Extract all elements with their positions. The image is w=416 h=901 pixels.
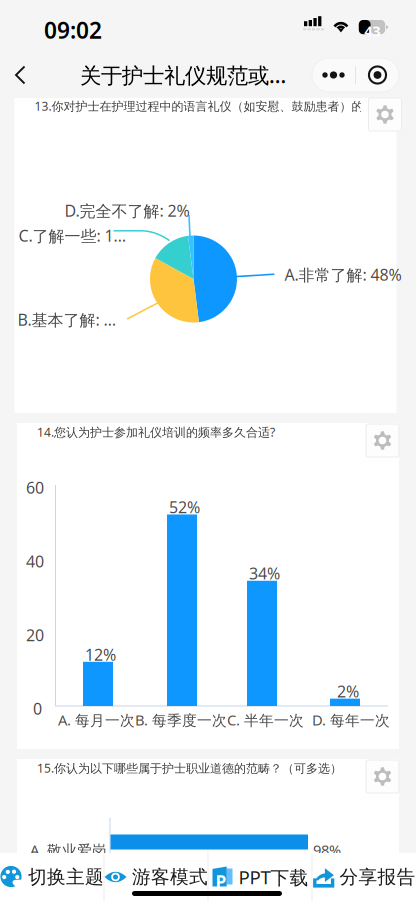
staticText: 12%: [85, 644, 116, 665]
button[interactable]: Chart settings: [368, 98, 401, 131]
staticText: A.非常了解: 48%: [284, 264, 401, 285]
staticText: 60: [26, 477, 44, 498]
button[interactable]: PPT下载: [208, 853, 312, 901]
staticText: 40: [26, 551, 44, 572]
button[interactable]: Close: [356, 58, 399, 92]
staticText: D.完全不了解: 2%: [64, 200, 189, 221]
button[interactable]: More: [312, 58, 355, 92]
staticText: 关于护士礼仪规范或…: [80, 61, 286, 89]
button[interactable]: Chart settings: [366, 760, 399, 793]
staticText: D. 每年一次: [312, 710, 390, 730]
button[interactable]: 分享报告: [312, 853, 416, 901]
staticText: 34%: [249, 563, 280, 584]
button[interactable]: 切换主题: [0, 853, 104, 901]
staticText: 游客模式: [132, 865, 208, 888]
staticText: 15.你认为以下哪些属于护士职业道德的范畴？（可多选）: [37, 760, 342, 776]
staticText: 13.你对护士在护理过程中的语言礼仪（如安慰、鼓励患者）的了: [34, 98, 375, 114]
staticText: 2%: [337, 681, 359, 702]
staticText: 43: [364, 21, 380, 40]
staticText: 切换主题: [28, 865, 104, 888]
staticText: C.了解一些: 1…: [18, 225, 126, 246]
button[interactable]: Chart settings: [366, 424, 399, 457]
staticText: 09:02: [44, 15, 102, 45]
staticText: 52%: [169, 496, 200, 518]
staticText: 20: [26, 624, 44, 645]
staticText: 14.您认为护士参加礼仪培训的频率多久合适?: [37, 424, 275, 440]
staticText: B. 每季度一次: [135, 710, 227, 730]
staticText: 分享报告: [339, 865, 415, 888]
button[interactable]: Back: [14, 53, 54, 97]
staticText: 0: [33, 698, 42, 719]
staticText: C. 半年一次: [227, 710, 304, 730]
staticText: A. 每月一次: [58, 710, 135, 730]
staticText: PPT下载: [238, 865, 308, 889]
staticText: B.基本了解: …: [17, 309, 116, 330]
staticText: P: [215, 870, 226, 893]
button[interactable]: 游客模式: [104, 853, 208, 901]
staticText: 98%: [313, 840, 341, 859]
staticText: A. 敬业爱岗: [30, 840, 107, 860]
